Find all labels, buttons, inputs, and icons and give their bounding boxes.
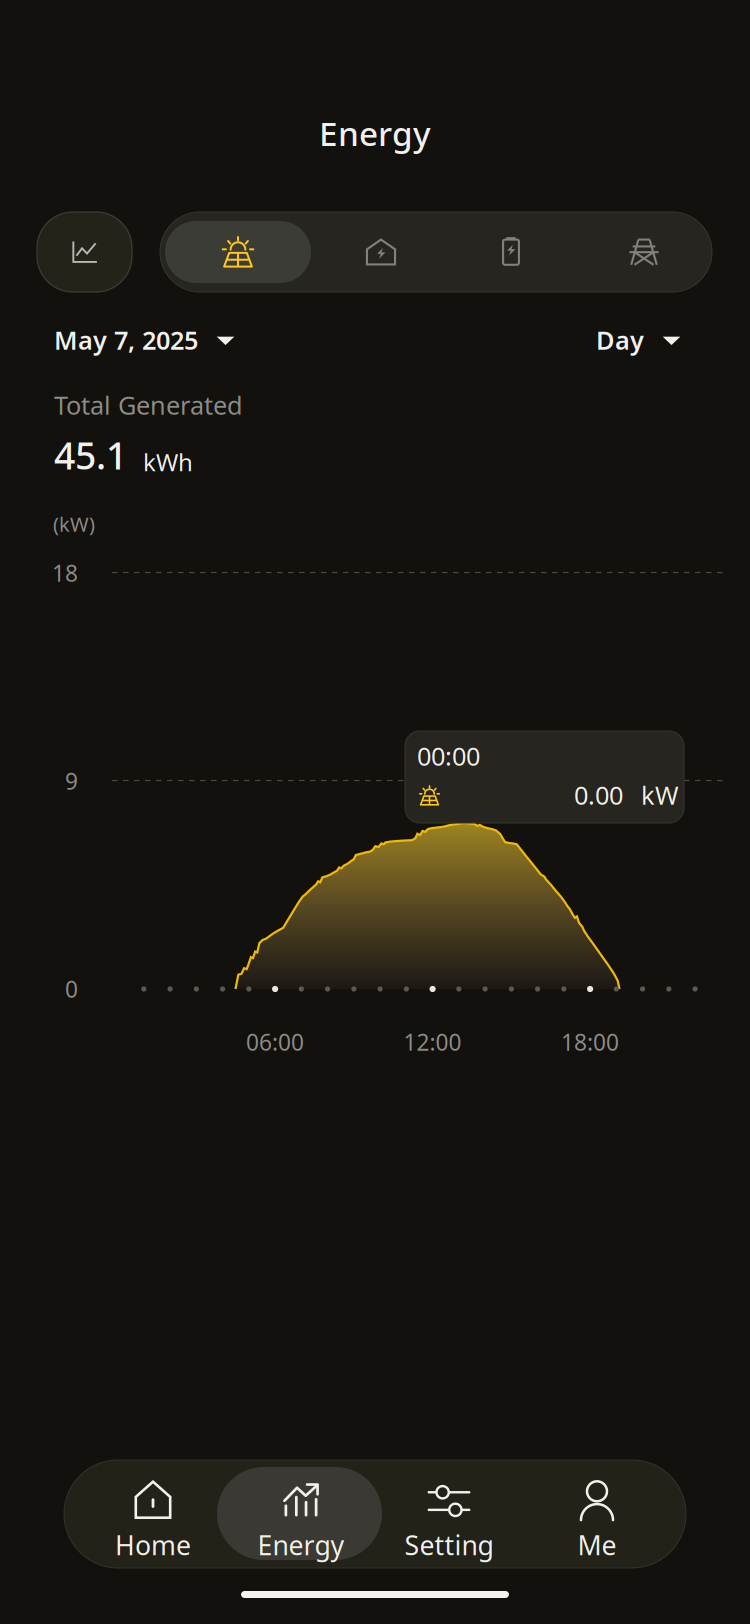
staticText: May 7, 2025	[54, 323, 198, 357]
staticText: Setting	[404, 1527, 493, 1563]
button[interactable]: Home consumption	[316, 212, 446, 292]
button[interactable]: Grid	[576, 212, 712, 292]
button[interactable]: Battery	[446, 212, 576, 292]
staticText: 12:00	[404, 1027, 462, 1057]
staticText: kWh	[143, 446, 193, 478]
button[interactable]: Home	[79, 1460, 227, 1568]
button[interactable]: Day	[596, 320, 682, 360]
staticText: 0.00	[574, 778, 623, 812]
button[interactable]: May 7, 2025	[54, 320, 236, 360]
staticText: 9	[65, 766, 78, 796]
button[interactable]: Chart overview	[37, 212, 132, 292]
button[interactable]: Energy	[227, 1460, 375, 1568]
staticText: Day	[596, 323, 644, 357]
staticText: 45.1	[54, 430, 127, 480]
staticText: Total Generated	[54, 388, 243, 422]
staticText: (kW)	[53, 511, 95, 537]
staticText: 0	[65, 974, 78, 1004]
staticText: 00:00	[417, 739, 480, 773]
button[interactable]: Setting	[375, 1460, 523, 1568]
staticText: Energy	[319, 111, 431, 155]
staticText: 18:00	[561, 1027, 619, 1057]
staticText: Energy	[257, 1527, 344, 1563]
button[interactable]: Me	[523, 1460, 671, 1568]
staticText: Home	[115, 1527, 191, 1563]
staticText: 18	[52, 558, 78, 588]
button[interactable]: Solar	[160, 212, 316, 292]
staticText: kW	[641, 778, 679, 812]
staticText: 06:00	[246, 1027, 304, 1057]
staticText: Me	[577, 1527, 616, 1563]
